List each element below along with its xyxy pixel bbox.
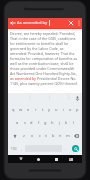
staticText: i bbox=[63, 107, 65, 112]
button[interactable]: Recent apps bbox=[51, 155, 61, 163]
staticText: k bbox=[65, 120, 68, 125]
button[interactable]: b bbox=[50, 130, 57, 141]
staticText: w bbox=[19, 107, 23, 112]
staticText: z bbox=[23, 133, 25, 138]
button[interactable]: h bbox=[49, 117, 56, 128]
staticText: f bbox=[38, 120, 40, 125]
staticText: t bbox=[42, 107, 44, 112]
button[interactable]: t bbox=[39, 103, 46, 115]
button[interactable]: l bbox=[70, 117, 77, 128]
button[interactable]: s bbox=[21, 117, 28, 128]
button[interactable]: i bbox=[60, 103, 67, 115]
staticText: a bbox=[16, 120, 19, 125]
staticText: u bbox=[55, 107, 58, 112]
button[interactable]: Decree, are hereby repealed: Provided, T… bbox=[8, 29, 82, 93]
button[interactable]: p bbox=[74, 103, 81, 115]
staticText: e bbox=[27, 107, 30, 112]
button[interactable]: n bbox=[57, 130, 64, 141]
staticText: h bbox=[51, 120, 54, 125]
button[interactable]: v bbox=[43, 130, 50, 141]
button[interactable]: Backspace bbox=[71, 129, 81, 142]
button[interactable]: w bbox=[17, 103, 25, 115]
button[interactable]: z bbox=[20, 130, 28, 141]
staticText: . bbox=[65, 146, 67, 151]
button[interactable]: More options bbox=[75, 18, 82, 28]
staticText: j bbox=[59, 120, 61, 125]
staticText: y bbox=[48, 107, 51, 112]
button[interactable]: a bbox=[14, 117, 21, 128]
button[interactable]: Navigate up bbox=[8, 18, 17, 28]
staticText: s bbox=[24, 120, 26, 125]
staticText: p bbox=[76, 107, 79, 112]
staticText: m bbox=[66, 133, 70, 138]
button[interactable]: e bbox=[25, 103, 32, 115]
button[interactable]: k bbox=[63, 117, 70, 128]
staticText: x bbox=[31, 133, 34, 138]
button[interactable]: Search bbox=[72, 145, 79, 152]
button[interactable]: f bbox=[35, 117, 42, 128]
button[interactable]: j bbox=[56, 117, 63, 128]
staticText: As amended by bbox=[17, 20, 48, 26]
staticText: q bbox=[12, 107, 15, 112]
button[interactable]: d bbox=[28, 117, 35, 128]
button[interactable]: ?123 bbox=[9, 143, 18, 154]
button[interactable]: Clear search bbox=[67, 18, 75, 28]
staticText: o bbox=[69, 107, 72, 112]
staticText: n bbox=[59, 133, 62, 138]
staticText: g bbox=[44, 120, 47, 125]
button[interactable]: m bbox=[64, 130, 71, 141]
staticText: , bbox=[21, 146, 23, 151]
staticText: l bbox=[73, 120, 75, 125]
staticText: c bbox=[39, 133, 41, 138]
button[interactable]: c bbox=[36, 130, 43, 141]
button[interactable]: Change keyboard bbox=[66, 155, 76, 163]
button[interactable]: , bbox=[18, 143, 25, 154]
button[interactable]: q bbox=[9, 103, 17, 115]
staticText: r bbox=[35, 107, 37, 112]
staticText: d bbox=[30, 120, 33, 125]
button[interactable]: y bbox=[46, 103, 53, 115]
button[interactable]: Voice input bbox=[74, 95, 80, 101]
button[interactable]: u bbox=[53, 103, 60, 115]
staticText: b bbox=[52, 133, 55, 138]
button[interactable]: x bbox=[28, 130, 36, 141]
staticText: Decree, are hereby repealed: Provided, T… bbox=[10, 31, 80, 86]
button[interactable]: Shift bbox=[9, 129, 20, 142]
staticText: v bbox=[45, 133, 48, 138]
button[interactable]: As amended by bbox=[17, 18, 67, 28]
button[interactable]: g bbox=[42, 117, 49, 128]
button[interactable]: Home bbox=[33, 155, 43, 163]
staticText: ?123 bbox=[11, 147, 17, 151]
button[interactable]: o bbox=[67, 103, 74, 115]
button[interactable]: r bbox=[32, 103, 39, 115]
button[interactable]: Hide keyboard bbox=[16, 155, 25, 163]
